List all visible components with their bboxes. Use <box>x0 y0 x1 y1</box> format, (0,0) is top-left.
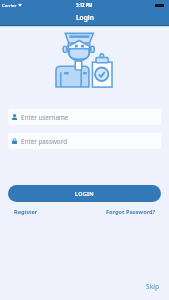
button[interactable]: Enter username <box>8 109 161 125</box>
button[interactable]: Forgot Password? <box>106 208 156 216</box>
staticText: 3:12 PM <box>76 2 93 8</box>
button[interactable]: LOGIN <box>8 185 161 202</box>
button[interactable]: Register <box>14 208 38 216</box>
button[interactable]: Enter password <box>8 133 161 149</box>
staticText: Carrier <box>2 2 17 8</box>
staticText: LOGIN <box>75 190 94 198</box>
staticText: Enter password <box>21 137 67 146</box>
button[interactable]: Skip <box>146 282 160 291</box>
staticText: Login <box>76 13 94 22</box>
staticText: Enter username <box>21 113 69 122</box>
